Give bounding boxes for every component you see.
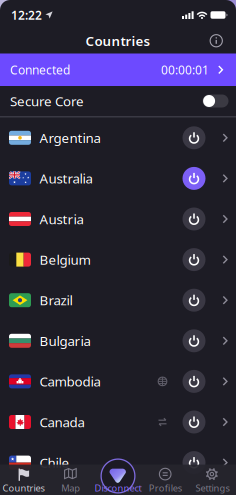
- staticText: Map: [61, 482, 80, 494]
- staticText: Secure Core: [10, 92, 84, 110]
- button[interactable]: [182, 248, 205, 271]
- button[interactable]: Austria: [0, 199, 236, 239]
- button[interactable]: [182, 451, 205, 474]
- button[interactable]: Profiles: [142, 465, 189, 495]
- button[interactable]: Brazil: [0, 280, 236, 320]
- button[interactable]: Chile: [0, 442, 236, 483]
- staticText: Canada: [39, 413, 84, 431]
- button[interactable]: [182, 126, 205, 149]
- button[interactable]: [182, 329, 205, 352]
- staticText: Profiles: [149, 482, 182, 494]
- button[interactable]: Bulgaria: [0, 320, 236, 361]
- staticText: 00:00:01: [161, 62, 209, 78]
- button[interactable]: [202, 94, 228, 107]
- button[interactable]: [182, 370, 205, 393]
- button[interactable]: Countries: [0, 465, 47, 495]
- button[interactable]: Australia: [0, 158, 236, 199]
- button[interactable]: Disconnect: [94, 458, 142, 495]
- staticText: Cambodia: [39, 372, 100, 390]
- staticText: Argentina: [39, 129, 100, 147]
- button[interactable]: Cambodia: [0, 361, 236, 402]
- button[interactable]: Connected: [0, 53, 236, 86]
- button[interactable]: Map: [47, 465, 94, 495]
- button[interactable]: Argentina: [0, 117, 236, 158]
- staticText: Austria: [39, 210, 83, 228]
- button[interactable]: Settings: [189, 465, 236, 495]
- staticText: Brazil: [39, 291, 72, 309]
- staticText: Countries: [3, 482, 45, 494]
- staticText: Bulgaria: [39, 332, 90, 350]
- staticText: Chile: [39, 454, 69, 471]
- staticText: Disconnect: [94, 482, 141, 494]
- button[interactable]: [182, 167, 205, 190]
- staticText: Settings: [195, 482, 229, 494]
- staticText: Australia: [39, 169, 92, 187]
- button[interactable]: [182, 289, 205, 312]
- button[interactable]: [182, 410, 205, 433]
- staticText: Connected: [10, 62, 70, 78]
- staticText: 12:22: [11, 7, 42, 23]
- button[interactable]: Belgium: [0, 239, 236, 280]
- staticText: Belgium: [39, 251, 90, 268]
- button[interactable]: Canada: [0, 402, 236, 442]
- button[interactable]: [182, 207, 205, 230]
- button[interactable]: [209, 34, 223, 47]
- staticText: Countries: [85, 32, 150, 50]
